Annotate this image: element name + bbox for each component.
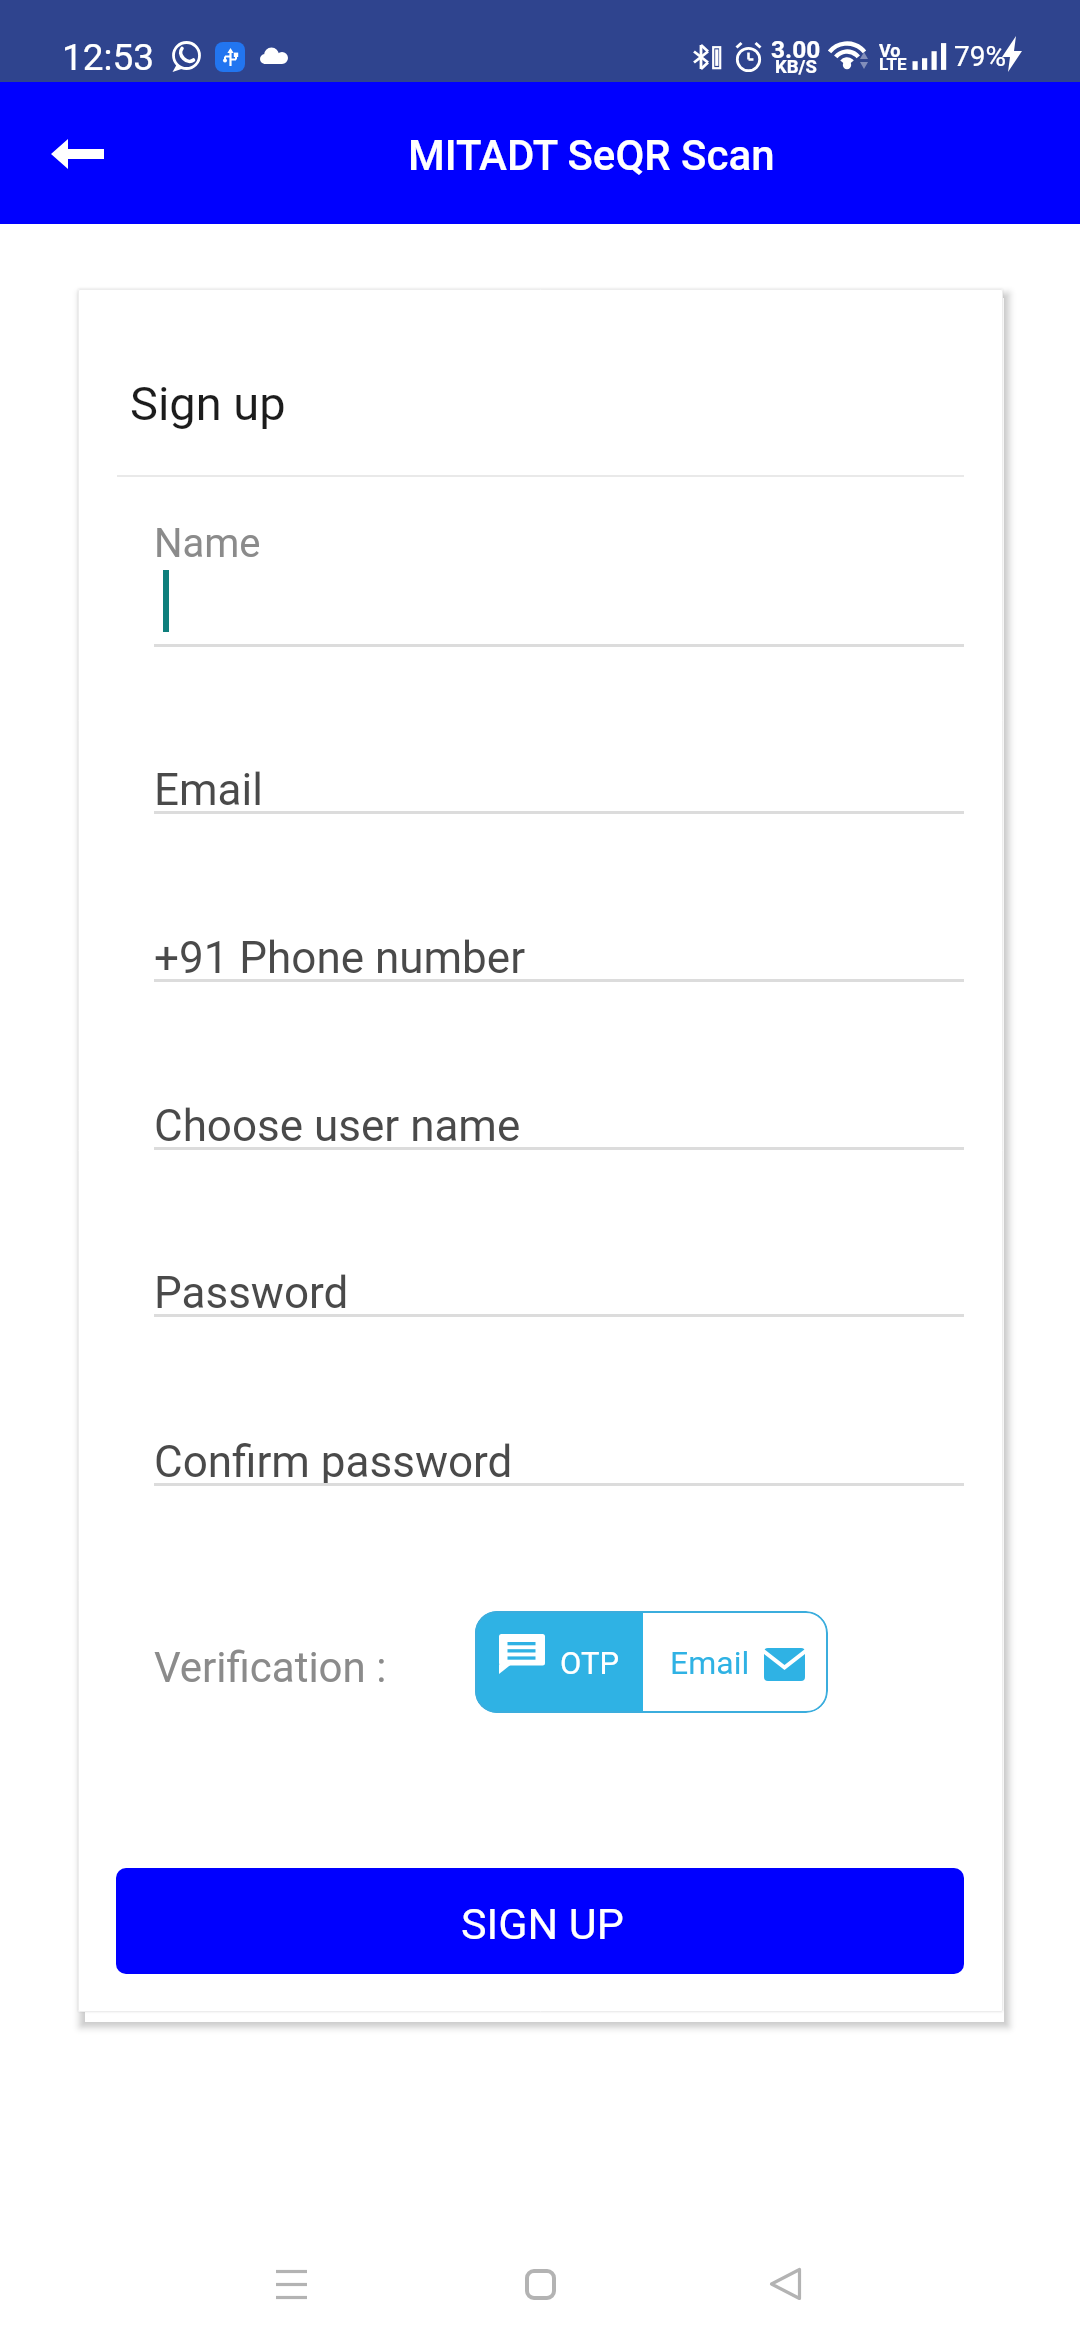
staticText: Choose user name (154, 1100, 521, 1152)
staticText: Verification : (154, 1643, 387, 1692)
staticText: SIGN UP (461, 1899, 624, 1949)
staticText: Vo (879, 40, 901, 61)
staticText: LTE (879, 54, 907, 74)
staticText: +91 Phone number (154, 932, 526, 984)
staticText: Email (154, 764, 263, 816)
button[interactable]: OTP (475, 1611, 641, 1713)
staticText: Confirm password (154, 1436, 513, 1488)
staticText: 12:53 (62, 36, 155, 79)
staticText: KB/S (775, 56, 817, 78)
staticText: OTP (560, 1645, 619, 1681)
staticText: Email (670, 1644, 750, 1682)
staticText: 3.00 (771, 35, 821, 64)
button[interactable]: SIGN UP (116, 1868, 964, 1974)
staticText: MITADT SeQR Scan (408, 131, 775, 180)
staticText: Password (154, 1267, 349, 1319)
button[interactable]: Back (710, 2224, 860, 2340)
staticText: Name (154, 520, 261, 567)
staticText: 79% (954, 40, 1006, 73)
button[interactable]: Back (30, 107, 124, 201)
button[interactable]: Email (641, 1611, 828, 1713)
button[interactable]: Home (465, 2224, 615, 2340)
button[interactable]: Recent apps (216, 2224, 366, 2340)
staticText: Sign up (130, 376, 286, 431)
